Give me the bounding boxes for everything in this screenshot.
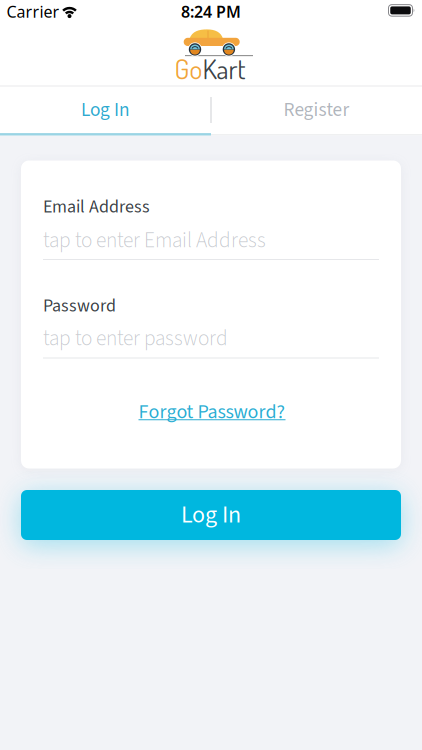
staticText: Forgot Password? xyxy=(138,398,285,426)
staticText: Email Address xyxy=(43,194,150,220)
button[interactable]: tap to enter password xyxy=(43,321,379,355)
staticText: Register xyxy=(283,96,349,124)
button[interactable]: Log In xyxy=(0,87,210,133)
staticText: Go xyxy=(174,51,202,86)
staticText: tap to enter Email Address xyxy=(43,225,266,256)
staticText: Kart xyxy=(202,51,245,86)
staticText: Log In xyxy=(81,96,130,124)
staticText: tap to enter password xyxy=(43,323,228,354)
staticText: Password xyxy=(43,293,116,319)
button[interactable]: Log In xyxy=(21,490,401,540)
button[interactable]: Forgot Password? xyxy=(138,398,285,426)
staticText: Log In xyxy=(181,498,241,532)
button[interactable]: Register xyxy=(211,87,421,133)
button[interactable]: tap to enter Email Address xyxy=(43,223,379,257)
staticText: 8:24 PM xyxy=(181,1,241,22)
staticText: Carrier xyxy=(6,1,59,22)
